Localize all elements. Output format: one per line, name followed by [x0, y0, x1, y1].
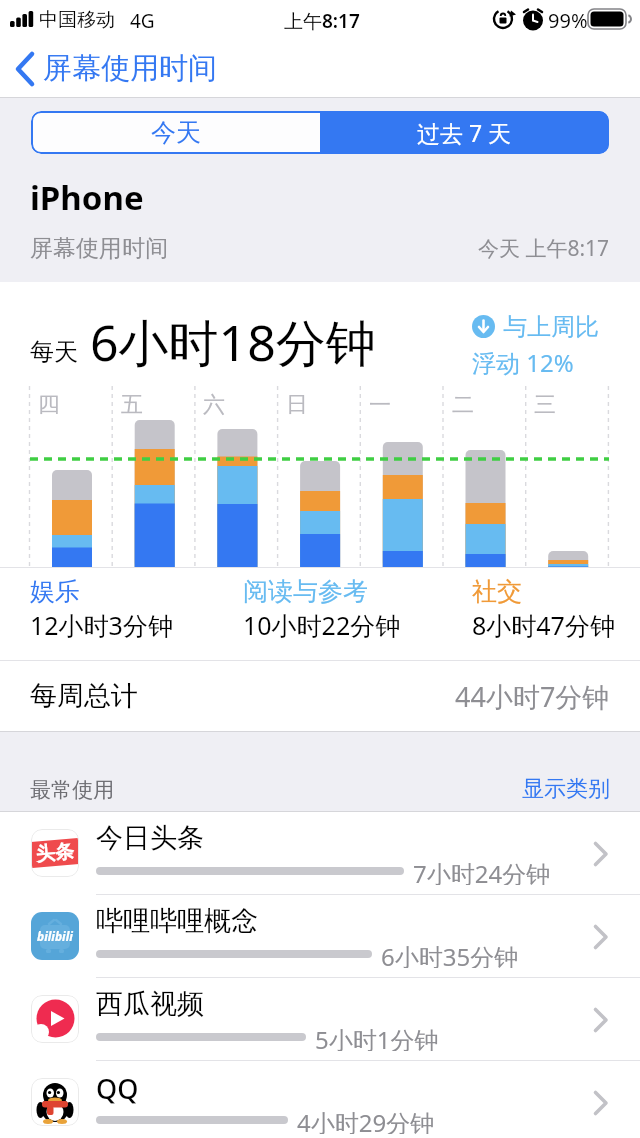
staticText: 今天 — [151, 117, 201, 148]
staticText: 六 — [203, 391, 225, 419]
button[interactable]: 西瓜视频 — [0, 978, 640, 1061]
button[interactable]: 过去 7 天 — [320, 111, 609, 154]
staticText: 哔哩哔哩概念 — [96, 904, 258, 938]
button[interactable]: 头条 — [0, 812, 640, 895]
staticText: 四 — [38, 391, 60, 419]
staticText: 浮动 12% — [472, 346, 574, 379]
staticText: 每天 — [30, 337, 78, 367]
staticText: 日 — [286, 391, 308, 419]
staticText: 12小时3分钟 — [30, 608, 173, 642]
staticText: 社交 — [472, 576, 522, 607]
staticText: 二 — [452, 391, 474, 419]
staticText: iPhone — [30, 175, 144, 220]
staticText: 一 — [369, 391, 391, 419]
staticText: 过去 7 天 — [417, 117, 512, 148]
staticText: 显示类别 — [522, 775, 610, 803]
staticText: 5小时1分钟 — [315, 1023, 439, 1051]
staticText: 屏幕使用时间 — [30, 234, 168, 263]
staticText: 西瓜视频 — [96, 987, 204, 1021]
staticText: 44小时7分钟 — [455, 678, 610, 715]
staticText: 99% — [548, 7, 588, 34]
staticText: 今天 上午8:17 — [478, 234, 610, 263]
staticText: 7小时24分钟 — [413, 857, 551, 885]
staticText: 头条 — [35, 839, 75, 867]
staticText: 最常使用 — [30, 777, 114, 803]
staticText: 阅读与参考 — [243, 576, 368, 607]
button[interactable]: 显示类别 — [522, 775, 610, 803]
staticText: 三 — [534, 391, 556, 419]
staticText: 与上周比 — [503, 312, 599, 342]
staticText: 五 — [121, 391, 143, 419]
button[interactable]: bilibili — [0, 895, 640, 978]
staticText: 4G — [130, 8, 155, 34]
staticText: 上午8:17 — [284, 8, 360, 34]
staticText: bilibili — [37, 928, 73, 944]
staticText: 娱乐 — [30, 576, 80, 607]
staticText: QQ — [96, 1070, 139, 1107]
staticText: 10小时22分钟 — [243, 608, 401, 642]
staticText: 今日头条 — [96, 821, 204, 855]
staticText: 4小时29分钟 — [297, 1106, 435, 1134]
staticText: 8小时47分钟 — [472, 608, 615, 642]
staticText: 每周总计 — [30, 679, 138, 713]
button[interactable]: 屏幕使用时间 — [14, 40, 217, 97]
button[interactable]: 今天 — [31, 111, 320, 154]
staticText: 6小时18分钟 — [90, 308, 376, 376]
staticText: 中国移动 — [39, 8, 115, 32]
button[interactable]: QQ — [0, 1061, 640, 1138]
button[interactable]: 每周总计 — [0, 661, 640, 731]
staticText: 6小时35分钟 — [381, 940, 519, 968]
staticText: 屏幕使用时间 — [43, 50, 217, 87]
